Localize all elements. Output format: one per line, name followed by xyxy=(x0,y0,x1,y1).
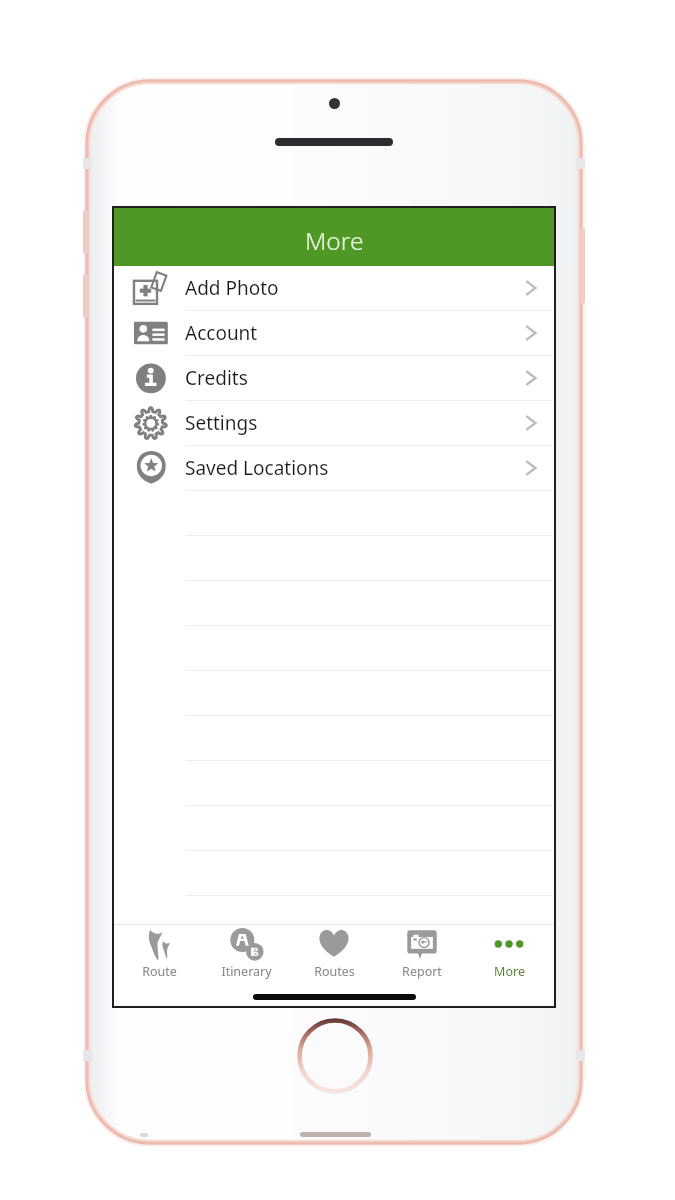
button[interactable]: Saved Locations xyxy=(114,446,554,491)
button[interactable]: Routes xyxy=(291,925,377,980)
staticText: Report xyxy=(402,963,442,980)
button[interactable]: More xyxy=(466,925,552,980)
staticText: More xyxy=(494,963,525,980)
button[interactable]: Report xyxy=(379,925,465,980)
button[interactable]: Itinerary xyxy=(203,925,289,980)
staticText: Settings xyxy=(185,410,258,436)
staticText: Credits xyxy=(185,365,248,391)
button[interactable]: Settings xyxy=(114,401,554,446)
staticText: Account xyxy=(185,320,258,346)
staticText: Routes xyxy=(314,963,355,980)
staticText: More xyxy=(305,224,364,257)
staticText: Itinerary xyxy=(221,963,272,980)
staticText: Route xyxy=(142,963,177,980)
button[interactable]: Credits xyxy=(114,356,554,401)
staticText: Saved Locations xyxy=(185,455,329,481)
staticText: Add Photo xyxy=(185,275,279,301)
button[interactable]: Route xyxy=(116,925,202,980)
button[interactable]: Add Photo xyxy=(114,266,554,311)
button[interactable]: Account xyxy=(114,311,554,356)
